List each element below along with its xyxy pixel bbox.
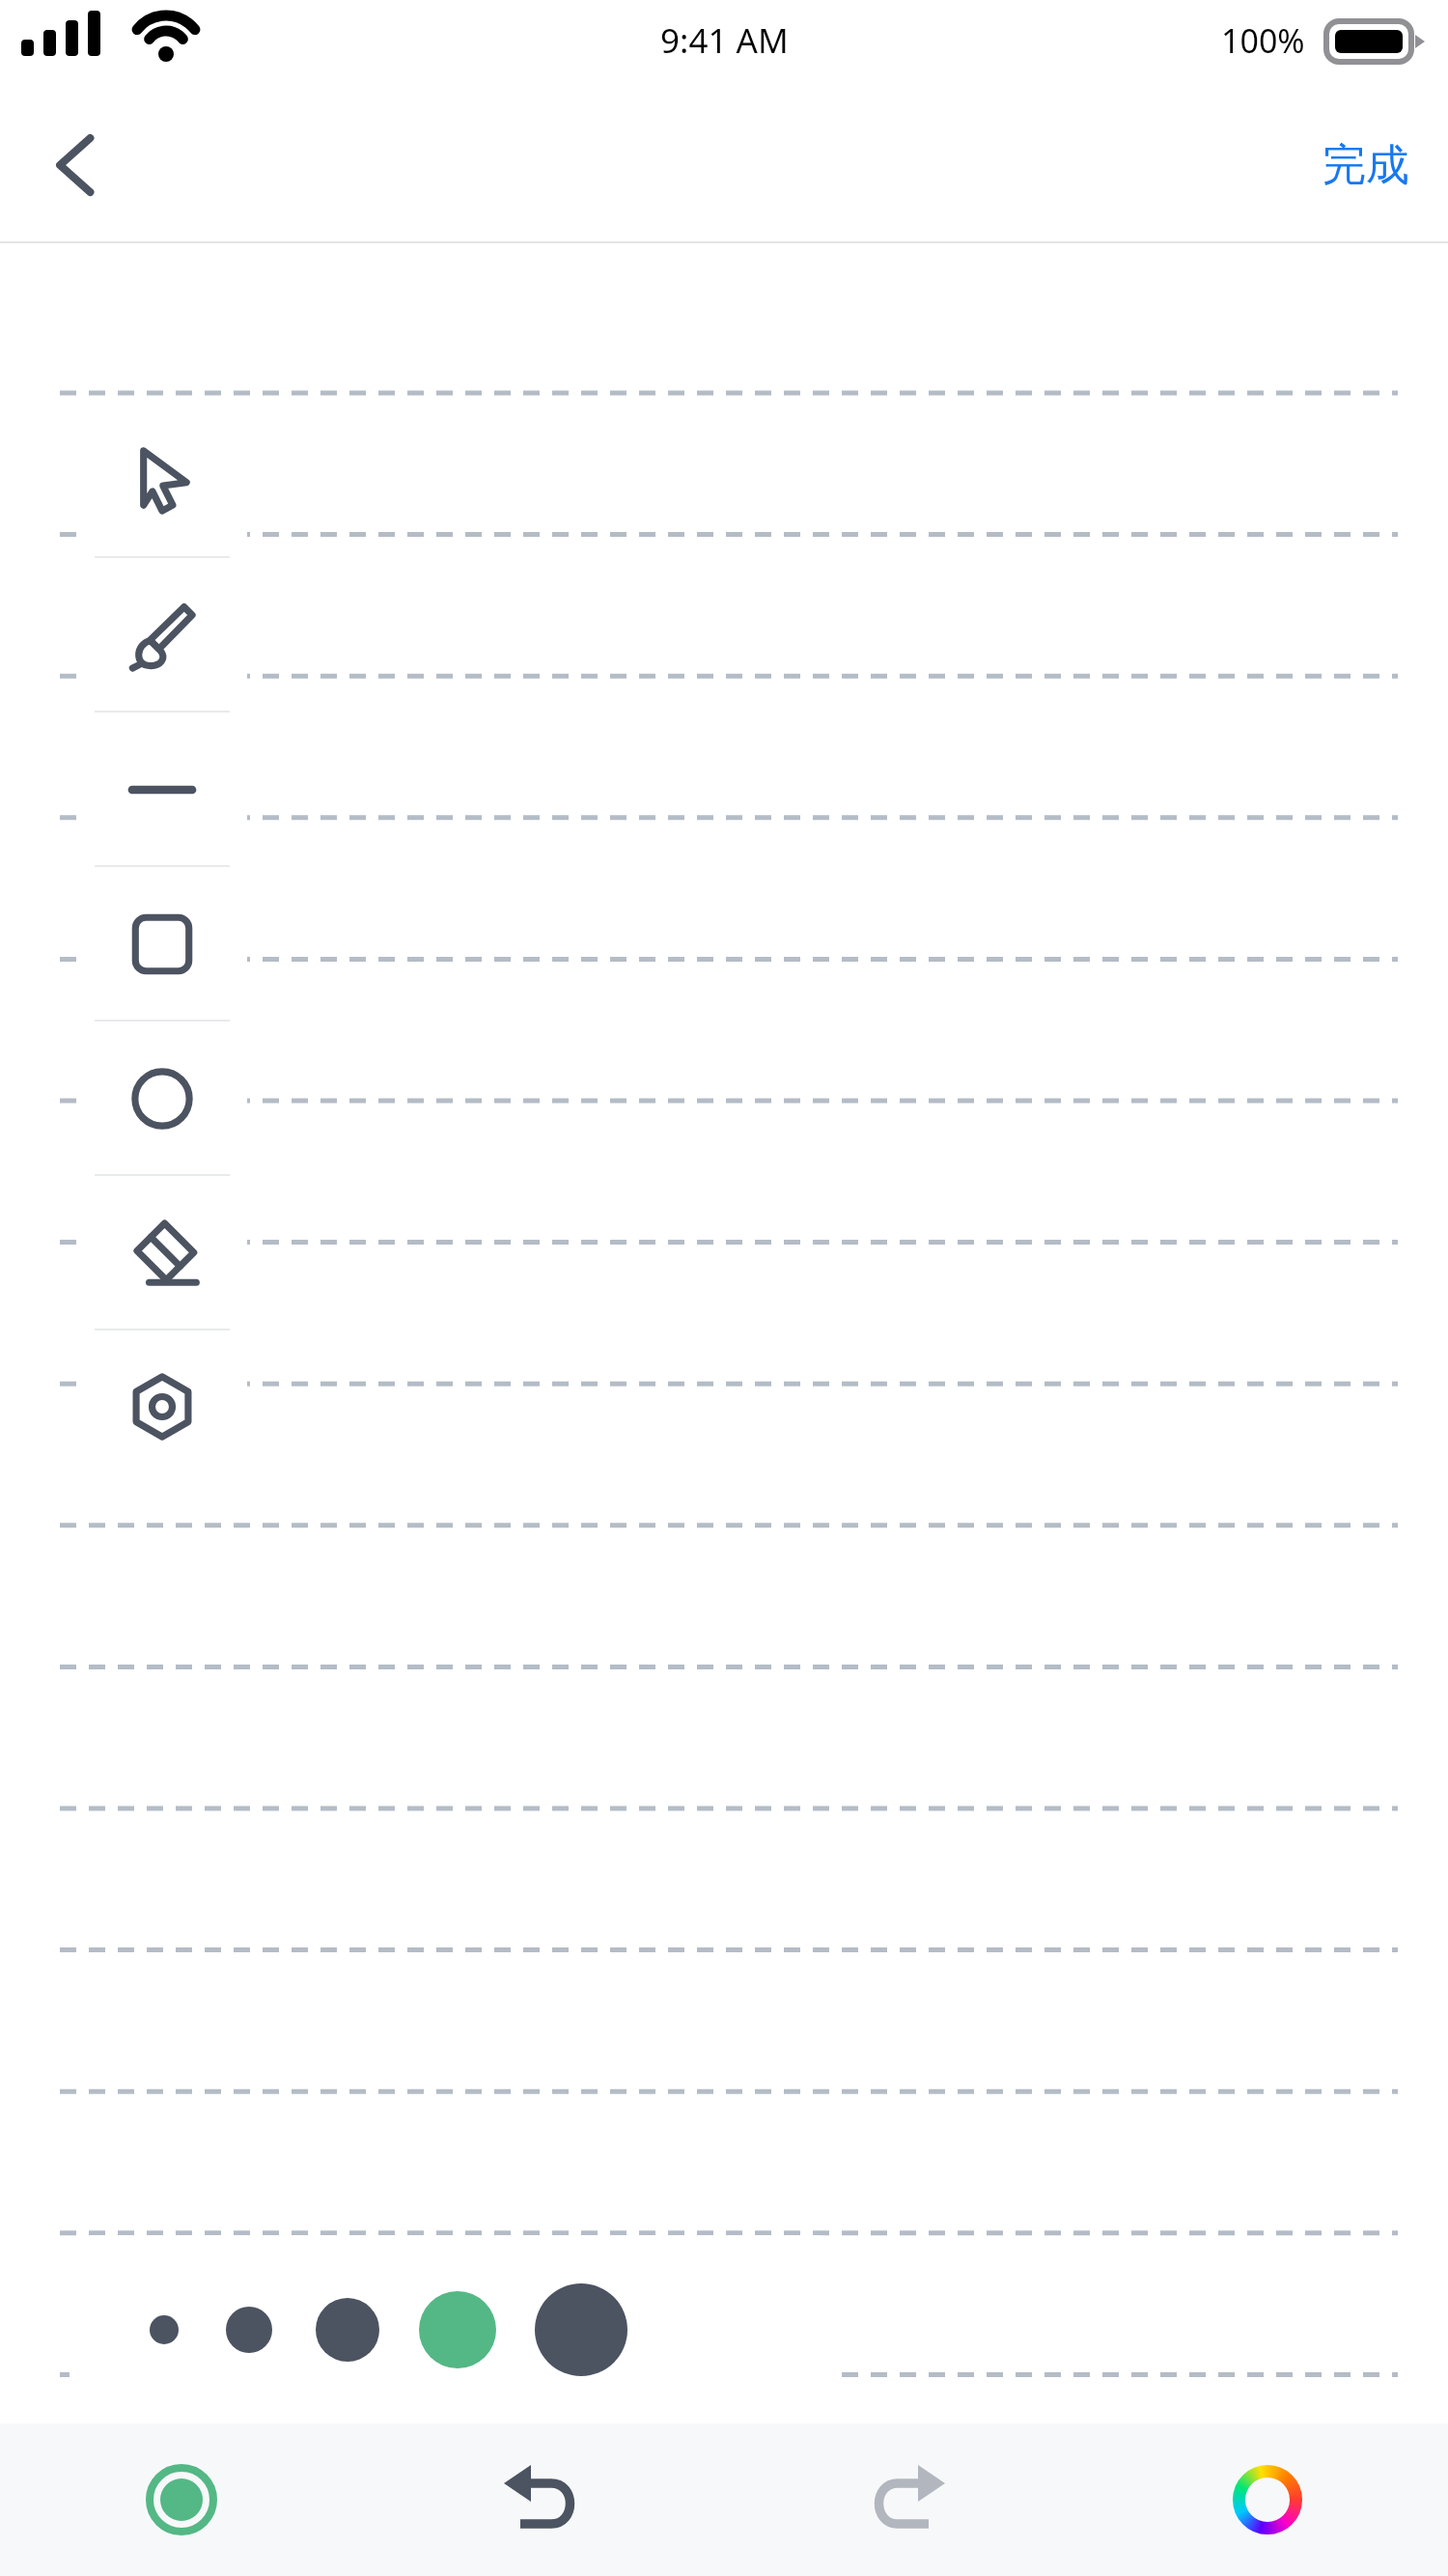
button[interactable]: 完成	[1307, 125, 1425, 207]
button[interactable]: Redo	[724, 2423, 1086, 2576]
button[interactable]: Brush size 5	[515, 2264, 647, 2395]
button[interactable]: Rectangle	[77, 867, 247, 1022]
button[interactable]: Current color	[0, 2423, 362, 2576]
button[interactable]: Brush size 2	[207, 2287, 292, 2372]
button[interactable]: Eraser	[77, 1176, 247, 1330]
staticText: 100%	[1221, 18, 1305, 63]
button[interactable]: Brush size 4	[400, 2272, 515, 2388]
staticText: 9:41 AM	[660, 17, 789, 64]
button[interactable]: Back	[23, 111, 131, 219]
button[interactable]: Settings	[77, 1330, 247, 1482]
button[interactable]: Brush size 1	[130, 2296, 198, 2364]
button[interactable]: Line	[77, 713, 247, 867]
staticText: 完成	[1323, 138, 1409, 193]
button[interactable]: Color wheel	[1086, 2423, 1448, 2576]
button[interactable]: Ellipse	[77, 1022, 247, 1176]
button[interactable]: Select	[77, 404, 247, 558]
button[interactable]: Brush	[77, 558, 247, 713]
button[interactable]: Brush size 3	[296, 2279, 399, 2381]
button[interactable]: Undo	[362, 2423, 724, 2576]
